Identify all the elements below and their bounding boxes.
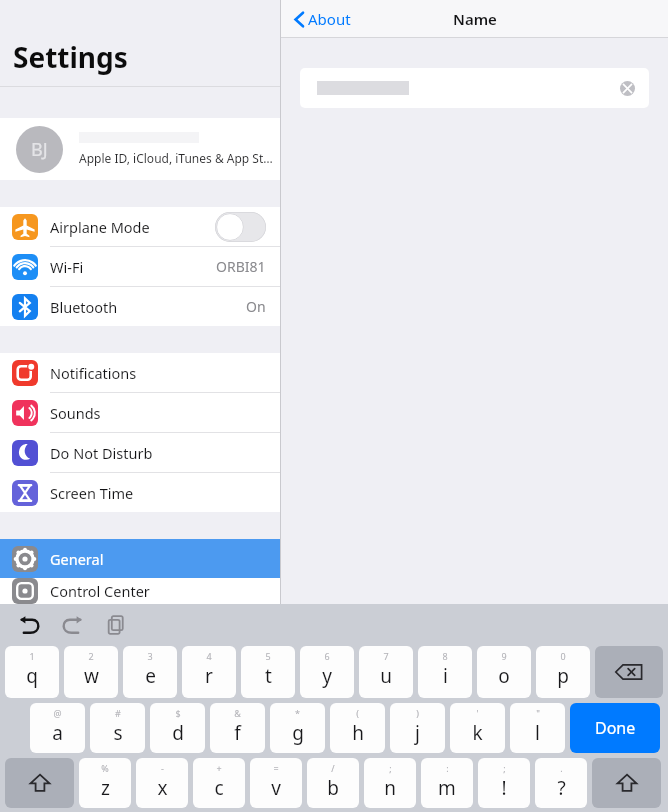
staticText: : [446,762,449,774]
staticText: 8 [442,650,448,662]
staticText: m [438,775,456,801]
button[interactable]: Airplane Mode [0,207,280,246]
button[interactable]: ; [478,758,530,808]
staticText: - [161,762,164,774]
button[interactable]: Clear text [300,68,649,108]
button[interactable]: # [90,703,145,753]
button[interactable]: 8 [418,646,472,698]
staticText: o [498,663,510,689]
button[interactable]: Done [570,703,660,753]
button[interactable]: = [250,758,302,808]
staticText: 3 [147,650,153,662]
staticText: f [234,720,241,746]
staticText: Sounds [50,403,101,423]
staticText: # [115,707,121,719]
staticText: Control Center [50,581,150,601]
button[interactable]: @ [30,703,85,753]
staticText: l [535,720,540,746]
button[interactable]: ) [390,703,445,753]
button[interactable]: Screen Time [0,473,280,512]
staticText: = [273,762,279,774]
staticText: h [352,720,364,746]
staticText: a [52,720,63,746]
staticText: Airplane Mode [50,217,150,237]
button[interactable]: 9 [477,646,531,698]
staticText: Notifications [50,363,137,383]
button[interactable]: Wi-Fi [0,247,280,286]
button[interactable]: & [210,703,265,753]
staticText: 2 [88,650,94,662]
button[interactable]: Shift [5,758,74,808]
button[interactable]: Airplane Mode toggle [215,212,266,242]
button[interactable]: " [510,703,565,753]
button[interactable]: 6 [300,646,354,698]
button[interactable]: 3 [123,646,177,698]
button[interactable]: / [307,758,359,808]
staticText: About [308,9,351,29]
button[interactable]: . [535,758,587,808]
staticText: z [101,775,110,801]
staticText: ' [476,707,479,719]
staticText: % [101,762,109,774]
button[interactable]: Notifications [0,353,280,392]
button[interactable]: Backspace [595,646,663,698]
staticText: n [384,775,396,801]
button[interactable]: 2 [64,646,118,698]
staticText: ? [557,775,566,801]
staticText: r [205,663,213,689]
staticText: $ [175,707,181,719]
staticText: d [172,720,184,746]
staticText: @ [53,707,62,719]
button[interactable]: - [136,758,188,808]
button[interactable]: 1 [5,646,59,698]
button[interactable]: 5 [241,646,295,698]
staticText: 5 [265,650,271,662]
staticText: Name [453,9,497,29]
button[interactable]: % [79,758,131,808]
button[interactable]: ( [330,703,385,753]
button[interactable]: BJ [0,118,280,180]
button[interactable]: 0 [536,646,590,698]
staticText: e [145,663,156,689]
staticText: c [214,775,224,801]
staticText: ( [356,707,359,719]
button[interactable]: General [0,539,280,578]
button[interactable]: Redo [60,612,86,638]
staticText: ; [389,762,392,774]
staticText: ! [501,775,507,801]
staticText: v [271,775,281,801]
staticText: y [322,663,332,689]
staticText: Screen Time [50,483,134,503]
button[interactable]: ; [364,758,416,808]
button[interactable]: Undo [16,612,42,638]
staticText: s [113,720,123,746]
staticText: & [234,707,241,719]
staticText: 0 [560,650,566,662]
button[interactable]: Shift [592,758,661,808]
button[interactable]: ' [450,703,505,753]
staticText: w [84,663,99,689]
staticText: b [327,775,339,801]
staticText: + [216,762,222,774]
staticText: 7 [383,650,389,662]
staticText: ORBI81 [216,257,266,276]
staticText: Done [595,717,636,739]
staticText: / [331,762,335,774]
button[interactable]: Sounds [0,393,280,432]
button[interactable]: Control Center [0,578,280,604]
button[interactable]: 7 [359,646,413,698]
button[interactable]: : [421,758,473,808]
button[interactable]: 4 [182,646,236,698]
button[interactable]: Clear text [620,81,635,96]
button[interactable]: + [193,758,245,808]
button[interactable]: Paste [104,612,130,638]
staticText: u [380,663,392,689]
staticText: ) [416,707,419,719]
staticText: j [415,720,420,746]
button[interactable]: Bluetooth [0,287,280,326]
button[interactable]: Do Not Disturb [0,433,280,472]
button[interactable]: $ [150,703,205,753]
button[interactable]: About [290,5,355,33]
staticText: General [50,549,104,569]
button[interactable]: * [270,703,325,753]
